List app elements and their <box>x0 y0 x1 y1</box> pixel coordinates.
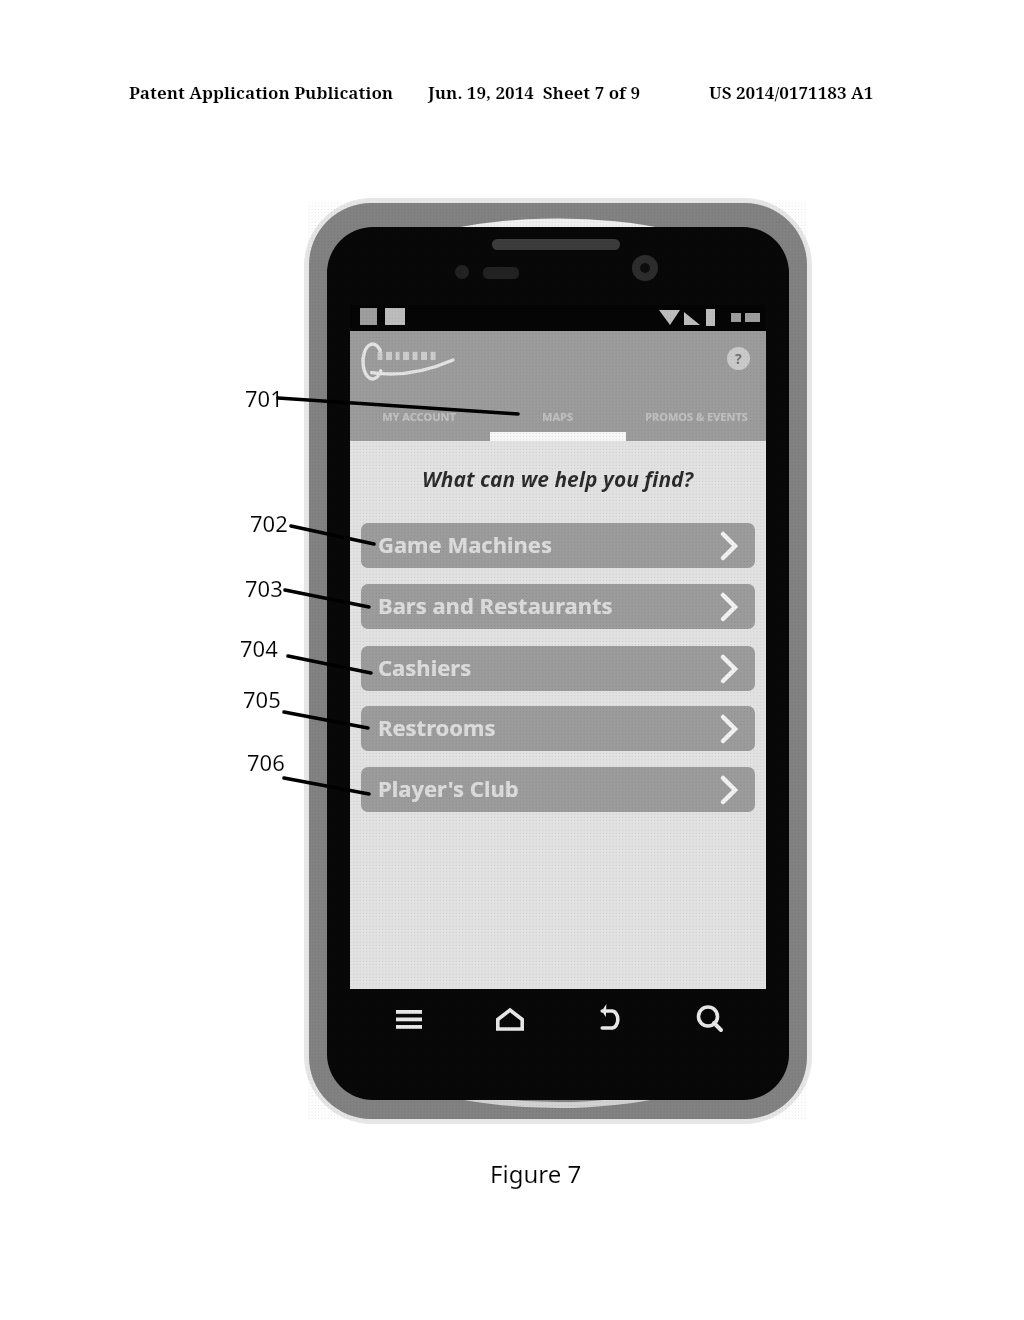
staticText: US 2014/0171183 A1 <box>709 81 874 104</box>
staticText: 704 <box>240 633 278 663</box>
button[interactable]: Restrooms <box>361 706 755 751</box>
staticText: ? <box>735 349 742 368</box>
staticText: Cashiers <box>378 652 472 682</box>
button[interactable]: Back <box>594 1005 624 1033</box>
staticText: MAPS <box>542 409 573 424</box>
button[interactable]: MAPS <box>488 397 627 441</box>
button[interactable]: MY ACCOUNT <box>350 397 488 441</box>
button[interactable]: Home <box>494 1005 526 1033</box>
staticText: Patent Application Publication <box>129 81 394 104</box>
button[interactable]: Search <box>695 1004 723 1032</box>
button[interactable]: PROMOS & EVENTS <box>627 397 766 441</box>
button[interactable]: Game Machines <box>361 523 755 568</box>
staticText: 701 <box>245 383 283 413</box>
button[interactable]: Bars and Restaurants <box>361 584 755 629</box>
staticText: PROMOS & EVENTS <box>645 409 748 424</box>
staticText: Restrooms <box>378 712 496 742</box>
staticText: Jun. 19, 2014 Sheet 7 of 9 <box>428 81 641 104</box>
staticText: Figure 7 <box>490 1157 582 1190</box>
staticText: Game Machines <box>378 529 553 559</box>
staticText: What can we help you find? <box>422 465 694 494</box>
staticText: MY ACCOUNT <box>382 409 456 424</box>
staticText: Player's Club <box>378 773 519 803</box>
staticText: 703 <box>245 573 283 603</box>
staticText: 705 <box>243 684 281 714</box>
staticText: 702 <box>250 508 288 538</box>
button[interactable]: Cashiers <box>361 646 755 691</box>
staticText: 706 <box>247 747 285 777</box>
button[interactable]: Menu <box>394 1006 424 1032</box>
button[interactable]: Help <box>727 347 750 370</box>
staticText: Bars and Restaurants <box>378 590 613 620</box>
button[interactable]: Player's Club <box>361 767 755 812</box>
